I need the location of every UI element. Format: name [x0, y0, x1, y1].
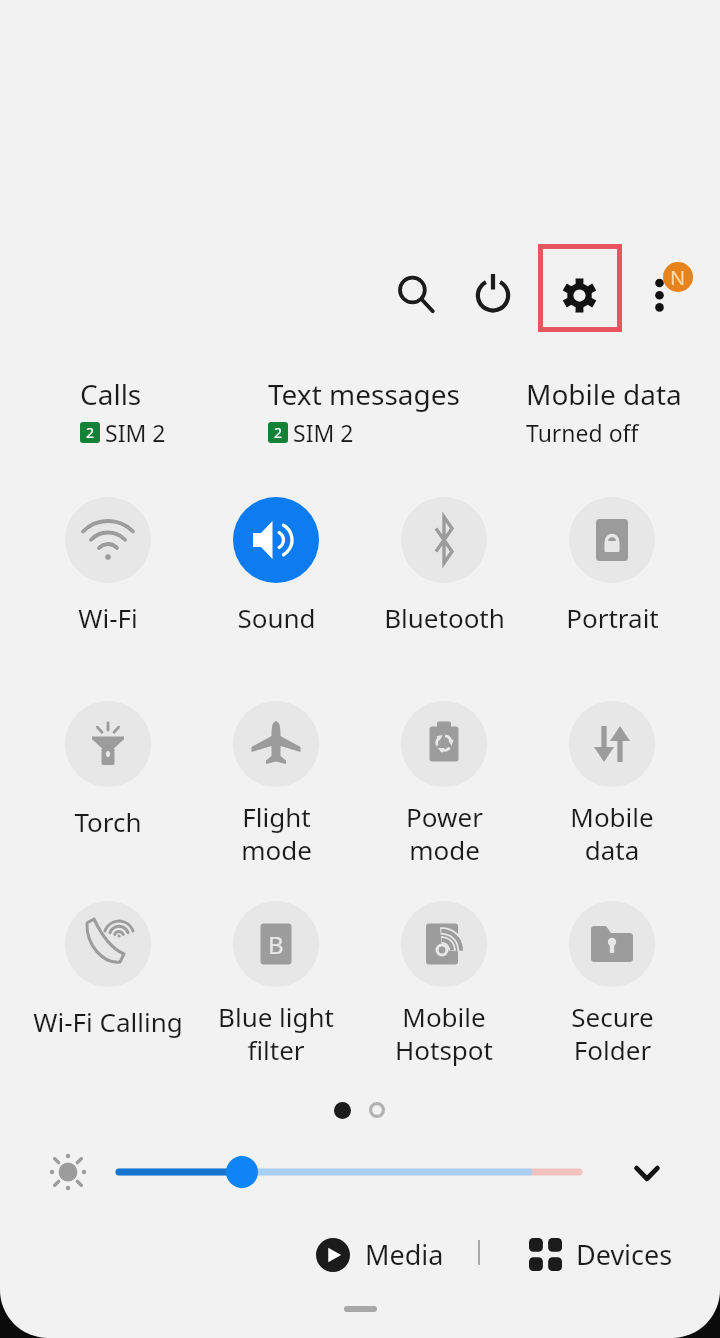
staticText: Text messages [268, 375, 460, 413]
staticText: Turned off [526, 417, 639, 448]
button[interactable]: Calls [80, 375, 166, 448]
staticText: Media [365, 1236, 444, 1273]
button[interactable]: Expand [622, 1146, 672, 1196]
button[interactable]: Torch [23, 701, 193, 839]
staticText: Calls [80, 375, 142, 413]
staticText: Bluetooth [384, 600, 505, 635]
button[interactable]: Search [380, 258, 452, 330]
button[interactable]: Mobile data [527, 701, 697, 868]
staticText: Mobile data [526, 375, 682, 413]
button[interactable]: Settings [538, 244, 622, 332]
button[interactable]: Media [316, 1236, 444, 1273]
staticText: Mobile data [570, 799, 654, 868]
button[interactable]: Flight mode [191, 701, 361, 868]
staticText: 2 [274, 423, 283, 442]
button[interactable]: Secure Folder [527, 901, 697, 1068]
button[interactable]: Mobile data [526, 375, 682, 448]
button[interactable]: Wi-Fi [23, 497, 193, 635]
button[interactable]: Sound [191, 497, 361, 635]
staticText: SIM 2 [105, 417, 166, 448]
button[interactable]: Brightness [106, 1156, 606, 1188]
staticText: Blue light filter [218, 999, 334, 1068]
staticText: Wi-Fi Calling [33, 1004, 183, 1039]
staticText: 2 [86, 423, 95, 442]
button[interactable]: Wi-Fi Calling [23, 901, 193, 1039]
button[interactable]: Bluetooth [359, 497, 529, 635]
staticText: N [670, 264, 686, 291]
staticText: B [268, 928, 284, 961]
staticText: Flight mode [241, 799, 312, 868]
button[interactable]: Power [457, 256, 529, 328]
button[interactable]: Portrait [527, 497, 697, 635]
staticText: Mobile Hotspot [395, 999, 493, 1068]
button[interactable]: More options [640, 262, 680, 302]
staticText: Power mode [406, 799, 483, 868]
staticText: SIM 2 [293, 417, 354, 448]
button[interactable]: Mobile Hotspot [359, 901, 529, 1068]
button[interactable]: Devices [529, 1236, 673, 1273]
staticText: Wi-Fi [78, 600, 138, 635]
staticText: Secure Folder [571, 999, 654, 1068]
button[interactable]: Power mode [359, 701, 529, 868]
staticText: Devices [576, 1236, 673, 1273]
staticText: Portrait [566, 600, 659, 635]
staticText: Sound [237, 600, 316, 635]
button[interactable]: B [191, 901, 361, 1068]
staticText: Torch [74, 804, 142, 839]
button[interactable]: Text messages [268, 375, 460, 448]
